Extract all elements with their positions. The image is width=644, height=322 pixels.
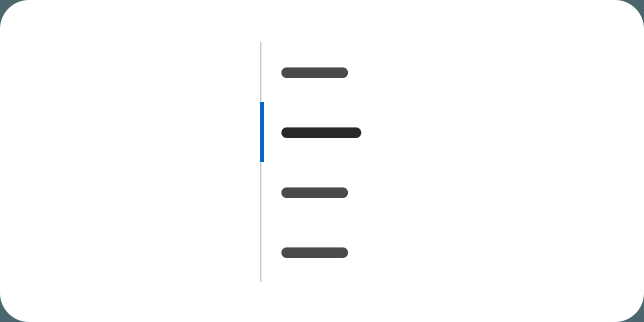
button[interactable]: Item 4 <box>266 231 376 275</box>
button[interactable]: Item 1 <box>266 51 376 95</box>
button[interactable]: Item 3 <box>266 171 376 215</box>
button[interactable]: Item 2 <box>266 111 376 155</box>
